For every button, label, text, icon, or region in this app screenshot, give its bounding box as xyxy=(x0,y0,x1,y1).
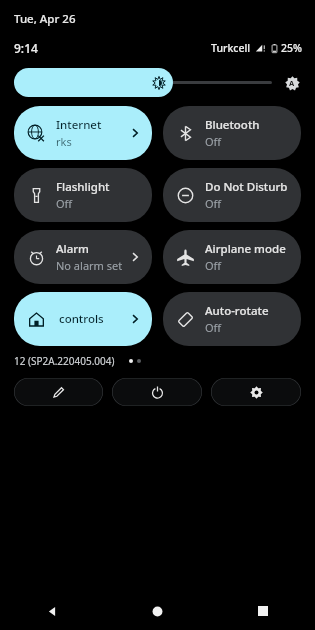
staticText: Flashlight xyxy=(56,179,110,195)
staticText: Off xyxy=(205,134,222,149)
button[interactable]: Recents xyxy=(210,592,315,630)
staticText: Auto-rotate xyxy=(205,303,269,319)
staticText: 9:14 xyxy=(14,40,38,56)
staticText: Off xyxy=(205,196,222,211)
button[interactable]: Settings xyxy=(211,378,301,406)
staticText: Do Not Disturb xyxy=(205,179,288,195)
button[interactable]: Auto brightness xyxy=(282,73,302,93)
button[interactable]: Bluetooth xyxy=(163,106,301,160)
staticText: A xyxy=(289,78,295,88)
staticText: 25% xyxy=(281,41,302,55)
button[interactable]: Edit xyxy=(14,378,103,406)
button[interactable]: Airplane mode xyxy=(163,230,301,284)
button[interactable]: Do Not Disturb xyxy=(163,168,301,222)
button[interactable]: Power xyxy=(112,378,202,406)
staticText: rks unavailable xyxy=(56,134,128,149)
button[interactable]: Auto-rotate xyxy=(163,292,301,346)
staticText: controls xyxy=(56,311,104,327)
staticText: Off xyxy=(205,258,222,273)
button[interactable]: Flashlight xyxy=(14,168,152,222)
staticText: Tue, Apr 26 xyxy=(14,11,76,27)
staticText: Internet xyxy=(56,117,102,133)
staticText: Turkcell xyxy=(211,41,251,55)
staticText: Bluetooth xyxy=(205,117,260,133)
staticText: Off xyxy=(56,196,73,211)
button[interactable]: Back xyxy=(0,592,105,630)
button[interactable] xyxy=(14,68,272,97)
button[interactable]: controls xyxy=(14,292,152,346)
staticText: Off xyxy=(205,320,222,335)
button[interactable]: Alarm xyxy=(14,230,152,284)
button[interactable]: Internet xyxy=(14,106,152,160)
button[interactable]: Home xyxy=(105,592,210,630)
staticText: Alarm xyxy=(56,241,89,257)
staticText: 12 (SP2A.220405.004) xyxy=(14,354,115,368)
staticText: No alarm set xyxy=(56,258,123,273)
staticText: Airplane mode xyxy=(205,241,286,257)
